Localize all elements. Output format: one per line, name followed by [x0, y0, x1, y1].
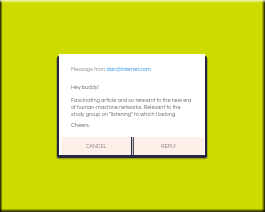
staticText: REPLY — [161, 144, 177, 149]
staticText: Cheers. — [71, 122, 90, 128]
staticText: Message from dan@internet.com — [71, 67, 151, 73]
staticText: Hey buddy! — [71, 84, 99, 90]
button[interactable]: CANCEL — [61, 137, 131, 155]
staticText: CANCEL — [86, 144, 107, 149]
button[interactable]: REPLY — [134, 137, 204, 155]
staticText: Fascinating article and so relevant to t… — [71, 97, 192, 117]
